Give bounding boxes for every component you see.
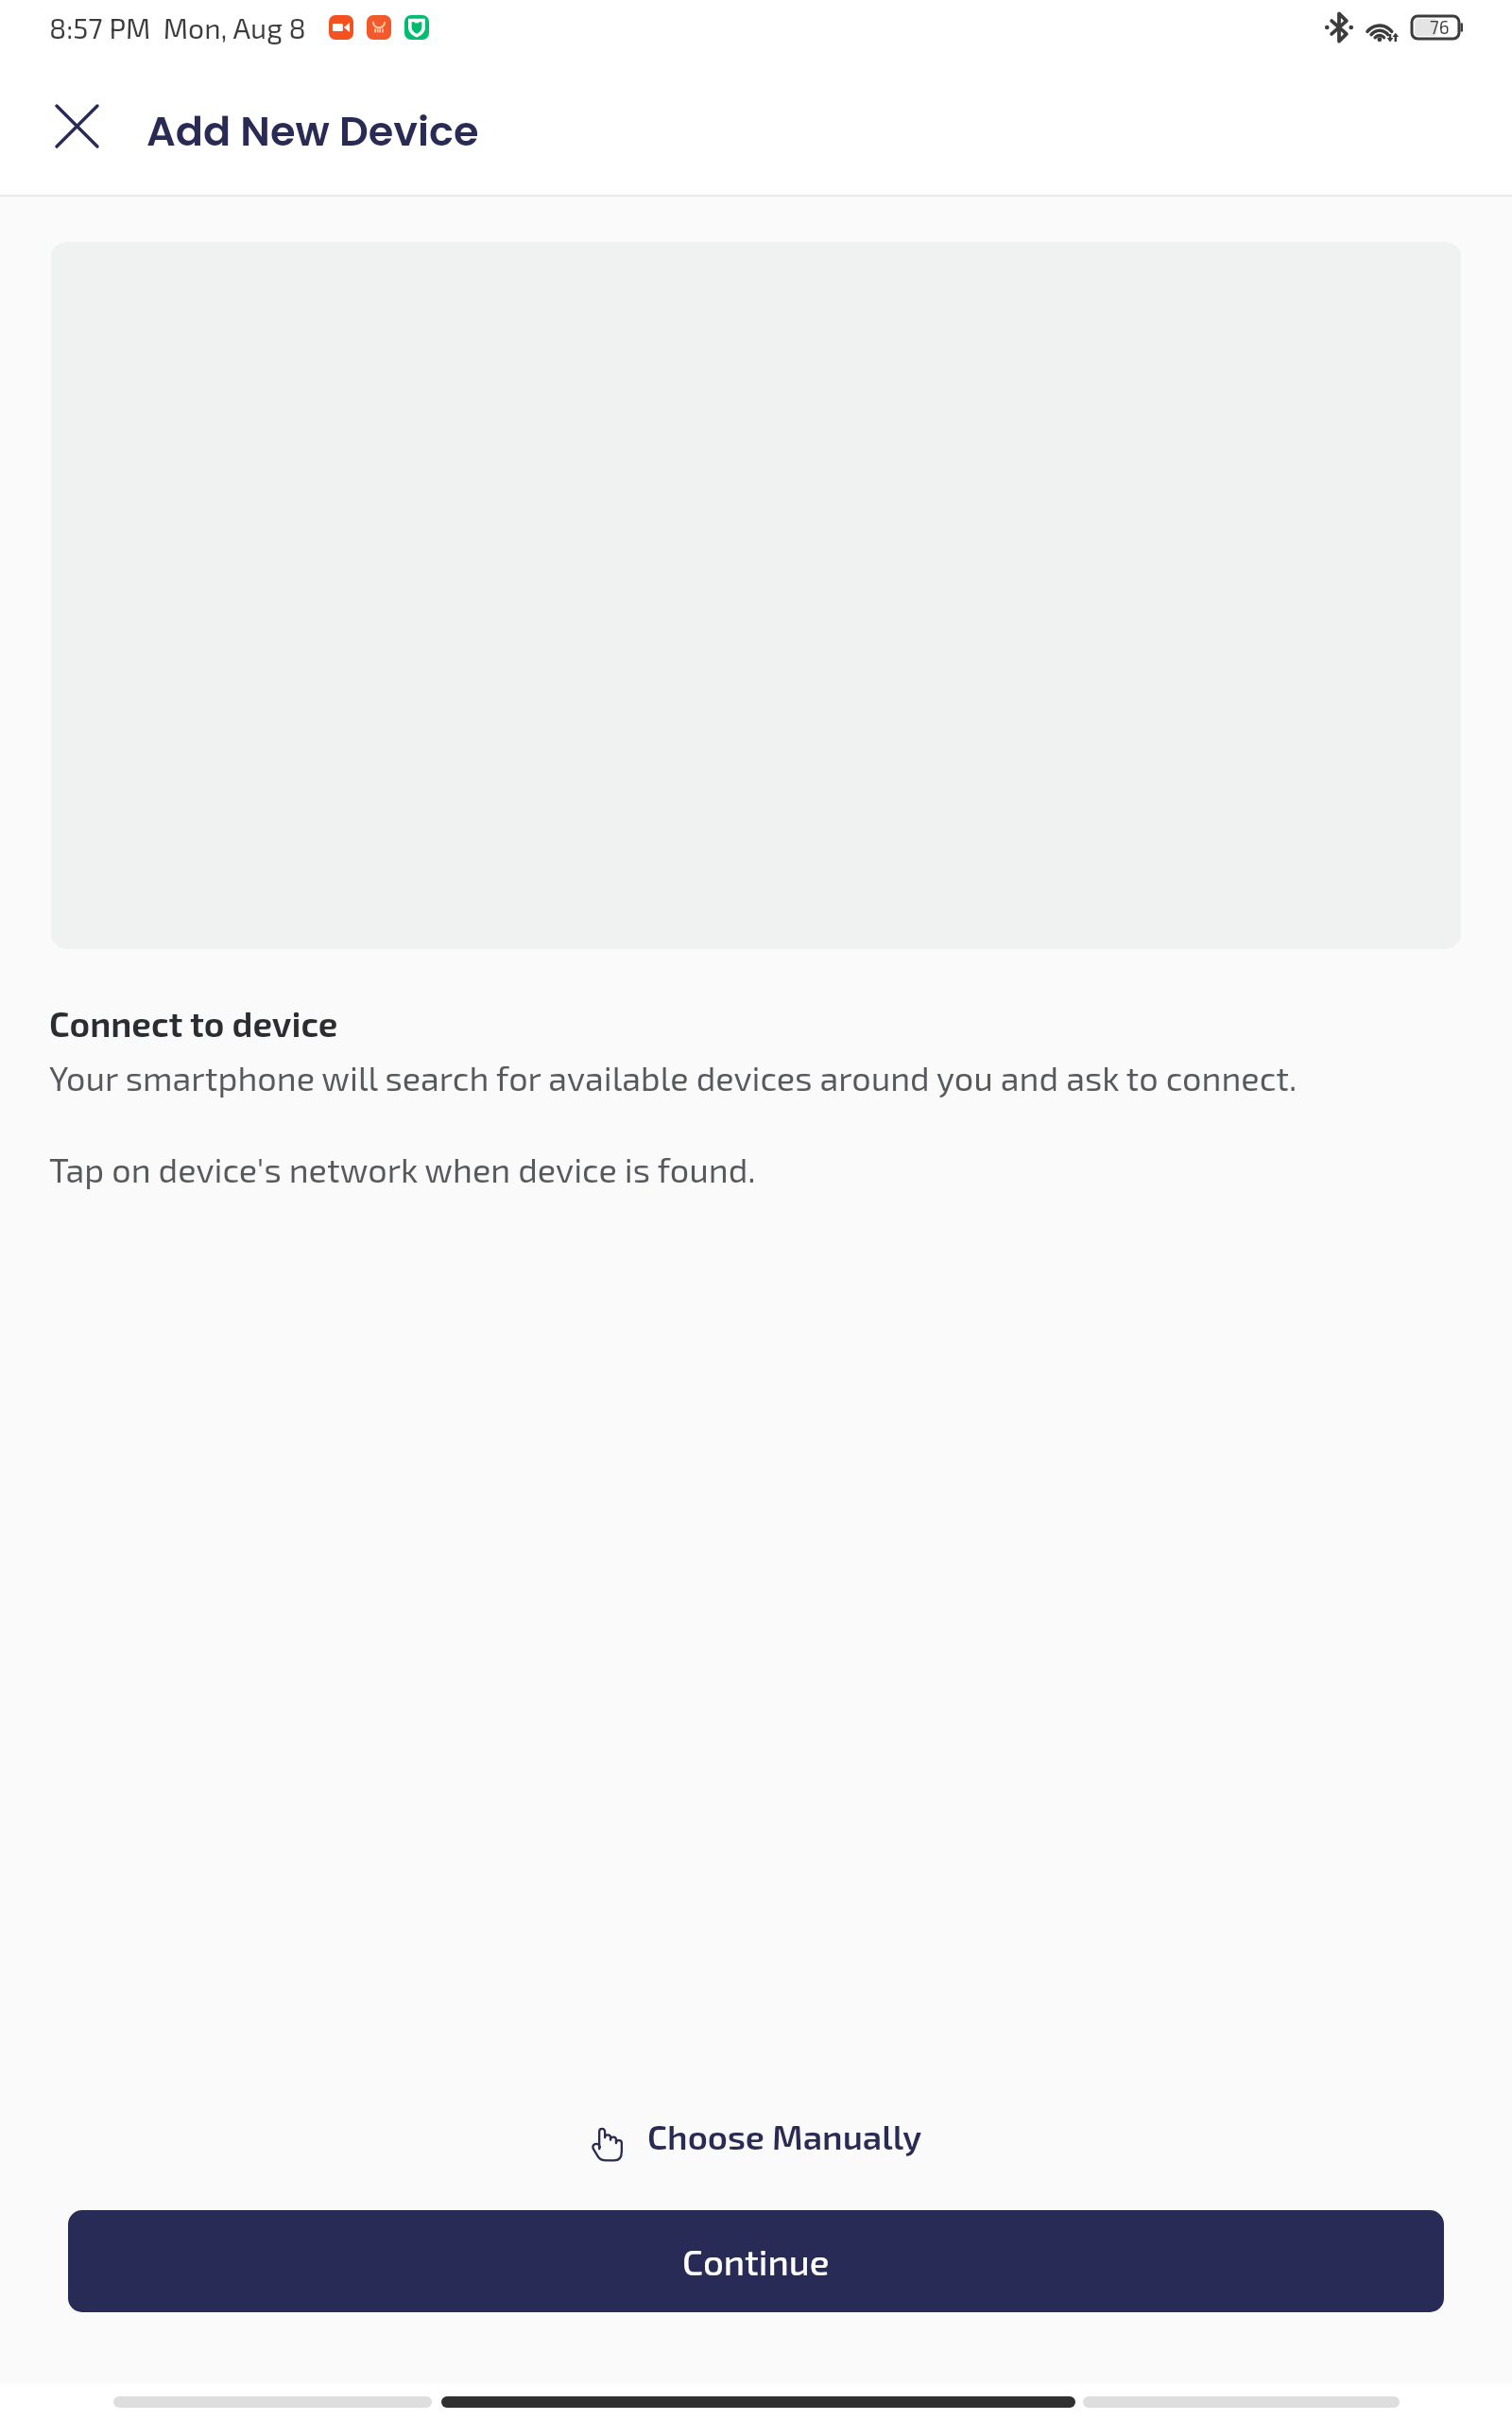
staticText: 76	[1430, 16, 1450, 38]
staticText: Tap on device's network when device is f…	[49, 1149, 756, 1189]
button[interactable]: Close	[29, 82, 124, 181]
button[interactable]: Choose Manually	[0, 2102, 1512, 2170]
staticText: Choose Manually	[647, 2116, 922, 2157]
staticText: Add New Device	[146, 103, 479, 160]
staticText: Connect to device	[49, 1002, 338, 1044]
button[interactable]: Continue	[68, 2210, 1444, 2312]
staticText: Your smartphone will search for availabl…	[49, 1057, 1297, 1098]
staticText: 8:57 PM Mon, Aug 8	[49, 10, 306, 44]
staticText: Continue	[682, 2239, 830, 2283]
